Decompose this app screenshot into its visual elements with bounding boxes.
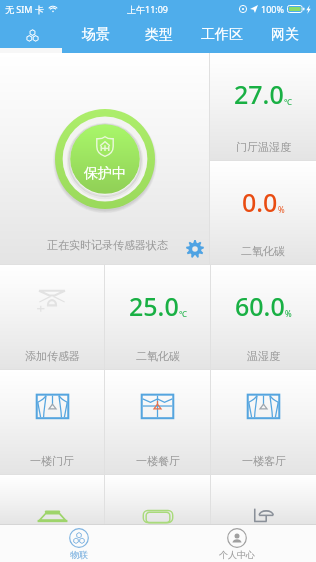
staticText: 场景 (82, 26, 110, 44)
button[interactable]: 类型 (127, 18, 190, 53)
staticText: 工作区 (201, 26, 243, 44)
button[interactable] (105, 475, 210, 524)
button[interactable]: 0.0 (210, 161, 316, 264)
button[interactable]: 添加传感器 (0, 265, 104, 369)
button[interactable]: Devices (0, 18, 64, 53)
button[interactable]: 60.0 (211, 265, 316, 369)
button[interactable]: 个人中心 (158, 525, 316, 562)
button[interactable]: 网关 (253, 18, 316, 53)
staticText: ℃ (179, 308, 187, 319)
button[interactable] (0, 475, 104, 524)
staticText: 个人中心 (219, 549, 255, 560)
staticText: 网关 (271, 26, 299, 44)
staticText: 一楼餐厅 (136, 454, 180, 468)
button[interactable]: 27.0 (210, 53, 316, 160)
button[interactable]: 25.0 (105, 265, 210, 369)
button[interactable]: 场景 (64, 18, 127, 53)
staticText: 添加传感器 (25, 349, 80, 363)
staticText: 保护中 (84, 165, 126, 183)
staticText: 25.0 (129, 289, 179, 323)
staticText: 类型 (145, 26, 173, 44)
staticText: 二氧化碳 (136, 349, 180, 363)
staticText: 一楼客厅 (242, 454, 286, 468)
other: Devices (27, 30, 38, 41)
button[interactable]: 物联 (0, 525, 158, 562)
button[interactable]: 保护中 (0, 53, 209, 264)
button[interactable]: 一楼客厅 (211, 370, 316, 474)
staticText: 一楼门厅 (30, 454, 74, 468)
staticText: % (285, 308, 292, 319)
staticText: 门厅温湿度 (236, 140, 291, 154)
button[interactable] (211, 475, 316, 524)
staticText: 0.0 (242, 185, 278, 219)
button[interactable]: 工作区 (190, 18, 253, 53)
staticText: 60.0 (235, 289, 285, 323)
staticText: 无 SIM 卡 (5, 3, 44, 15)
staticText: 100% (261, 3, 284, 15)
staticText: % (278, 204, 285, 215)
staticText: 上午11:09 (127, 3, 169, 15)
staticText: 二氧化碳 (241, 244, 285, 258)
button[interactable]: 一楼门厅 (0, 370, 104, 474)
button[interactable]: 一楼餐厅 (105, 370, 210, 474)
staticText: 温湿度 (247, 349, 280, 363)
staticText: 正在实时记录传感器状态 (47, 238, 168, 252)
button[interactable]: Settings (182, 236, 208, 262)
staticText: ℃ (284, 96, 292, 107)
staticText: 27.0 (234, 77, 284, 111)
staticText: 物联 (70, 549, 88, 560)
